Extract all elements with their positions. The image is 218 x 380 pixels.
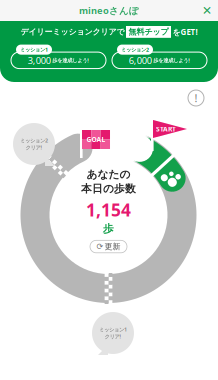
staticText: ミッション1 — [20, 46, 48, 53]
button[interactable]: Close — [196, 0, 218, 21]
staticText: ✕ — [202, 4, 212, 17]
staticText: ミッション2 — [121, 46, 149, 53]
button[interactable]: Information — [185, 87, 207, 109]
button[interactable]: ⟳ — [90, 240, 127, 253]
staticText: 歩を達成しよう! — [52, 57, 89, 64]
staticText: をGET! — [172, 27, 197, 37]
staticText: ⟳ — [96, 242, 103, 251]
staticText: ミッション2 — [20, 137, 48, 144]
staticText: 3,000 — [28, 54, 51, 66]
staticText: クリア! — [104, 333, 121, 340]
staticText: START — [156, 125, 176, 133]
staticText: 本日の歩数 — [81, 182, 136, 195]
staticText: 歩 — [103, 222, 114, 235]
staticText: 6,000 — [129, 54, 152, 66]
staticText: GOAL — [86, 135, 105, 144]
staticText: 無料チップ — [128, 27, 168, 37]
staticText: ミッション1 — [99, 326, 127, 333]
staticText: ! — [194, 91, 197, 105]
staticText: あなたの — [86, 168, 130, 181]
staticText: mineoさんぽ — [79, 4, 139, 17]
staticText: 歩を達成しよう! — [153, 57, 190, 64]
staticText: デイリーミッションクリアで — [20, 27, 124, 37]
staticText: クリア! — [25, 144, 42, 151]
staticText: 更新 — [104, 242, 120, 251]
staticText: 1,154 — [86, 198, 131, 221]
